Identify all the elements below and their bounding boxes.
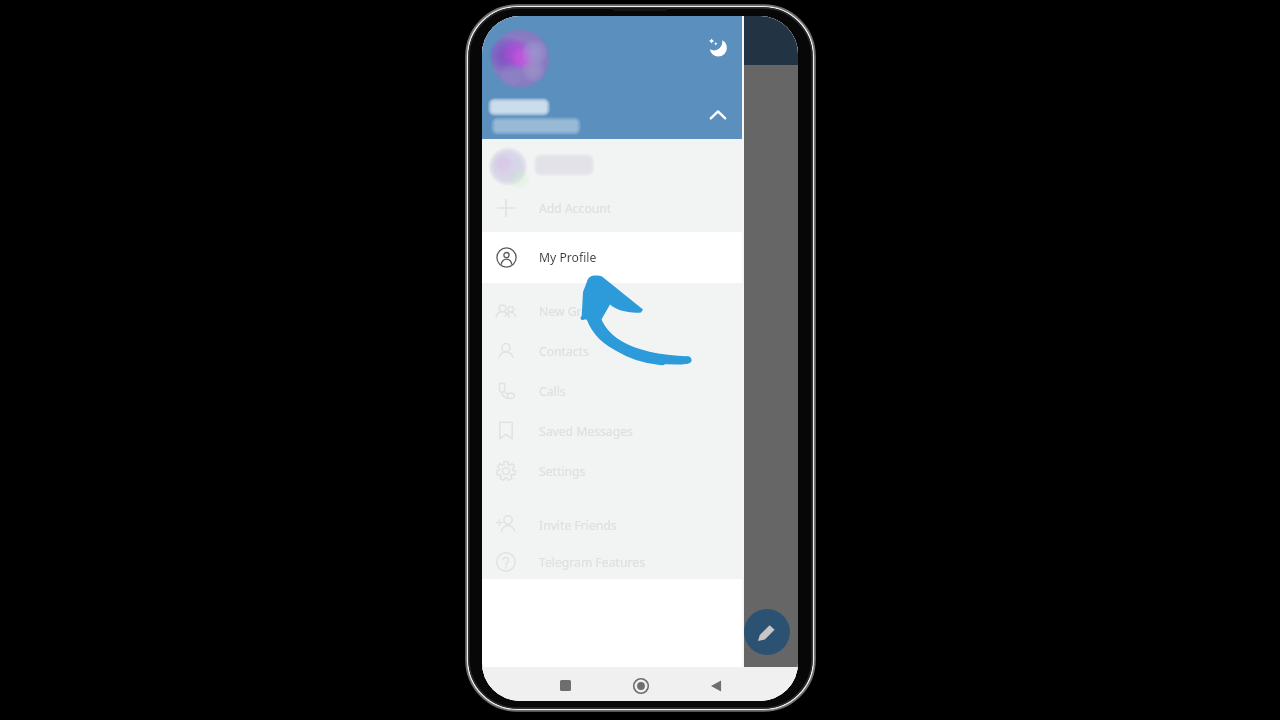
staticText: Telegram Features	[539, 554, 645, 571]
staticText: Saved Messages	[539, 423, 633, 440]
staticText: My Profile	[539, 249, 597, 266]
staticText: Invite Friends	[539, 517, 617, 534]
staticText: New Group	[539, 303, 604, 320]
button[interactable]: New message	[744, 609, 790, 655]
button[interactable]: Collapse accounts	[705, 102, 731, 128]
staticText: Contacts	[539, 343, 589, 360]
button[interactable]: Home	[626, 671, 655, 700]
button[interactable]: My Profile	[482, 232, 742, 283]
button[interactable]	[482, 139, 742, 187]
button[interactable]: Back	[701, 671, 730, 700]
staticText: Add Account	[539, 200, 612, 217]
staticText: Calls	[539, 383, 566, 400]
button[interactable]: Saved Messages	[482, 411, 742, 451]
button[interactable]: Toggle night mode	[705, 34, 731, 60]
button[interactable]: Telegram Features	[482, 545, 742, 579]
button[interactable]: Contacts	[482, 331, 742, 371]
button[interactable]: Recent apps	[551, 671, 579, 699]
staticText: Settings	[539, 463, 586, 480]
button[interactable]: New Group	[482, 291, 742, 331]
